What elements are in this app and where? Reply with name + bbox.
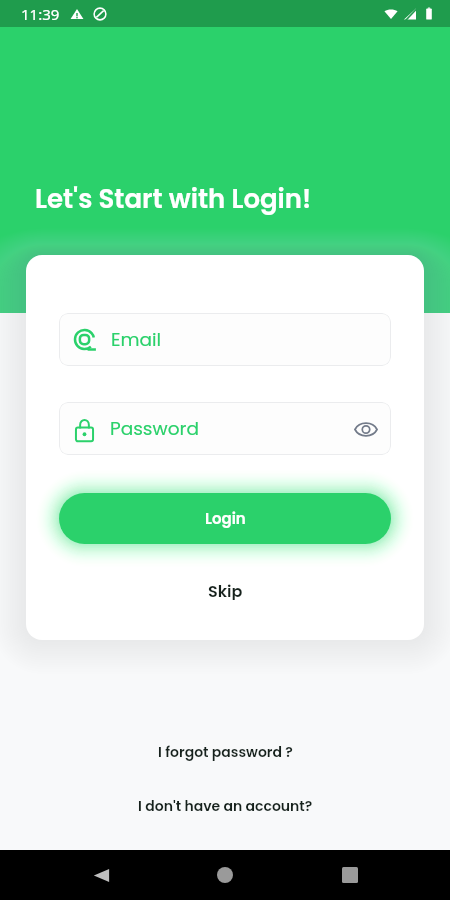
button[interactable]: Home — [201, 851, 249, 899]
button[interactable]: Skip — [190, 574, 261, 606]
staticText: I don't have an account? — [138, 796, 313, 816]
staticText: I forgot password ? — [158, 742, 293, 762]
staticText: 11:39 — [21, 4, 60, 24]
staticText: Login — [205, 508, 246, 529]
staticText: Skip — [208, 580, 243, 600]
staticText: Let's Start with Login! — [35, 181, 312, 217]
button[interactable]: Recents — [326, 851, 374, 899]
button[interactable]: Back — [77, 851, 125, 899]
button[interactable]: I don't have an account? — [126, 792, 325, 820]
button[interactable]: Password — [59, 402, 391, 455]
button[interactable]: Show password — [344, 407, 388, 451]
button[interactable]: Login — [59, 493, 391, 544]
button[interactable]: Email — [59, 313, 391, 366]
button[interactable]: I forgot password ? — [146, 738, 305, 766]
staticText: Email — [111, 327, 162, 353]
staticText: Password — [110, 416, 199, 442]
